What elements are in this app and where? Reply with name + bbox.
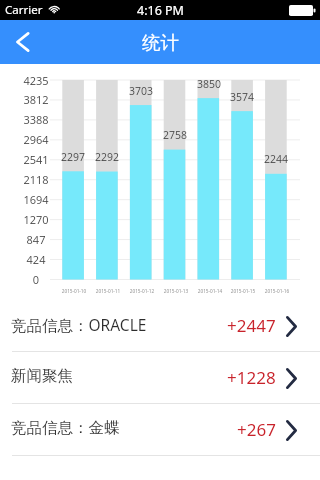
staticText: 2964 [6,132,66,147]
staticText: 4235 [6,73,66,88]
staticText: 2015-01-13 [159,288,193,294]
staticText: 2015-01-11 [91,288,125,294]
staticText: 竞品信息：ORACLE [11,314,147,335]
staticText: 统计 [142,31,179,54]
staticText: 2015-01-14 [193,288,227,294]
staticText: 3574 [225,90,259,104]
staticText: 0 [6,272,66,287]
staticText: 2297 [56,150,90,164]
staticText: 竞品信息：金蝶 [11,418,120,438]
staticText: 2015-01-10 [57,288,91,294]
staticText: +267 [237,418,276,441]
button[interactable]: Back [0,20,46,64]
staticText: +2447 [227,314,276,337]
staticText: 2292 [90,150,124,164]
staticText: 1694 [6,192,66,207]
staticText: 2758 [158,128,192,142]
staticText: 2015-01-15 [226,288,260,294]
staticText: +1228 [227,366,276,389]
staticText: 3850 [192,77,226,91]
button[interactable]: 竞品信息：金蝶 [0,404,320,456]
staticText: 847 [6,232,66,247]
staticText: 4:16 PM [137,2,184,19]
staticText: 2541 [6,152,66,167]
staticText: Carrier [5,2,43,18]
staticText: 新闻聚焦 [11,366,73,386]
staticText: 3388 [6,112,66,127]
staticText: 3703 [124,84,158,98]
staticText: 3812 [6,92,66,107]
staticText: 1270 [6,212,66,227]
staticText: 424 [6,252,66,267]
button[interactable]: 新闻聚焦 [0,352,320,404]
staticText: 2244 [259,152,293,166]
button[interactable]: 竞品信息：ORACLE [0,300,320,352]
staticText: 2118 [6,172,66,187]
staticText: 2015-01-12 [125,288,159,294]
staticText: 2015-01-16 [260,288,294,294]
